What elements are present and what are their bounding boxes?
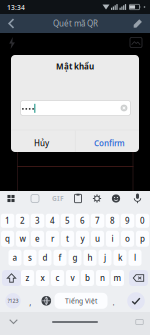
staticText: GIF [52,194,64,203]
button[interactable]: t [61,231,74,247]
button[interactable]: c [51,270,64,286]
button[interactable]: 8 [106,214,119,227]
button[interactable]: s [23,250,36,266]
button[interactable]: Photo library [129,36,143,48]
button[interactable]: k [113,250,126,266]
button[interactable]: GIFs [52,194,64,203]
staticText: ?123 [7,297,18,304]
staticText: 4 [50,215,55,226]
staticText: 13:34 [7,3,25,12]
button[interactable]: n [96,270,109,286]
staticText: z [25,273,29,283]
button[interactable]: i [106,231,119,247]
button[interactable]: 3 [31,214,44,227]
button[interactable]: h [83,250,96,266]
button[interactable]: Stickers [31,194,39,202]
button[interactable]: Symbols [5,293,21,309]
staticText: 8 [110,215,115,226]
staticText: a [12,252,17,263]
button[interactable]: Emoji [111,193,121,203]
staticText: q [5,233,10,244]
button[interactable]: e [31,231,44,247]
staticText: 7 [95,215,100,226]
staticText: Confirm [94,138,125,148]
staticText: i [111,233,113,244]
button[interactable]: Hide keyboard [8,318,18,325]
button[interactable]: u [91,231,104,247]
button[interactable]: j [98,250,111,266]
staticText: u [95,233,100,244]
button[interactable]: 5 [61,214,74,227]
staticText: c [55,273,59,283]
button[interactable]: a [8,250,21,266]
button[interactable]: b [81,270,94,286]
staticText: r [51,233,54,244]
button[interactable]: Edit [131,17,143,29]
button[interactable]: Keyboard settings [135,318,144,325]
staticText: s [28,252,32,263]
button[interactable]: x [36,270,49,286]
staticText: t [66,233,69,244]
button[interactable]: Space [54,293,107,309]
button[interactable]: g [68,250,81,266]
button[interactable]: m [111,270,124,286]
button[interactable]: y [76,231,89,247]
button[interactable]: f [53,250,66,266]
staticText: b [85,273,90,283]
staticText: w [19,233,25,244]
staticText: 6 [80,215,85,226]
button[interactable]: Keyboard settings [92,194,101,203]
button[interactable]: Shift [2,270,21,286]
staticText: m [113,273,121,283]
staticText: e [35,233,40,244]
button[interactable]: 4 [46,214,59,227]
button[interactable]: 0 [136,214,149,227]
staticText: Tiếng Việt [65,296,97,305]
button[interactable]: Back [5,16,17,30]
button[interactable]: Done [127,292,145,310]
staticText: Hủy [34,138,49,148]
button[interactable]: z [21,270,34,286]
staticText: l [134,252,136,263]
button[interactable]: d [38,250,51,266]
button[interactable]: Confirm [78,132,141,154]
staticText: , [29,297,31,308]
button[interactable]: 1 [1,214,14,227]
button[interactable]: Keyboard tools [7,194,15,203]
staticText: 9 [125,215,130,226]
button[interactable]: 6 [76,214,89,227]
button[interactable]: Hủy [10,132,73,154]
button[interactable]: 7 [91,214,104,227]
button[interactable]: Home [52,321,98,323]
staticText: . [112,297,114,308]
staticText: f [58,252,61,263]
button[interactable]: v [66,270,79,286]
button[interactable]: 2 [16,214,29,227]
button[interactable]: q [1,231,14,247]
staticText: 5 [65,215,70,226]
button[interactable]: , [26,296,34,308]
staticText: d [42,252,47,263]
staticText: 1 [5,215,10,226]
button[interactable]: w [16,231,29,247]
staticText: 3 [35,215,40,226]
staticText: o [125,233,130,244]
button[interactable]: Voice input [133,193,142,204]
button[interactable]: . [109,296,117,308]
button[interactable]: p [136,231,149,247]
staticText: 2 [20,215,25,226]
button[interactable]: Clipboard [73,193,82,203]
button[interactable]: r [46,231,59,247]
staticText: Mật khẩu [56,61,94,72]
staticText: y [80,233,84,244]
button[interactable]: Clear text [120,104,128,112]
button[interactable]: 9 [121,214,134,227]
staticText: Quét mã QR [53,18,98,29]
button[interactable]: Flash [6,36,18,50]
button[interactable]: l [128,250,141,266]
staticText: n [100,273,105,283]
button[interactable]: o [121,231,134,247]
button[interactable]: Delete [129,270,148,286]
button[interactable]: Switch language [41,296,51,306]
staticText: x [40,273,44,283]
